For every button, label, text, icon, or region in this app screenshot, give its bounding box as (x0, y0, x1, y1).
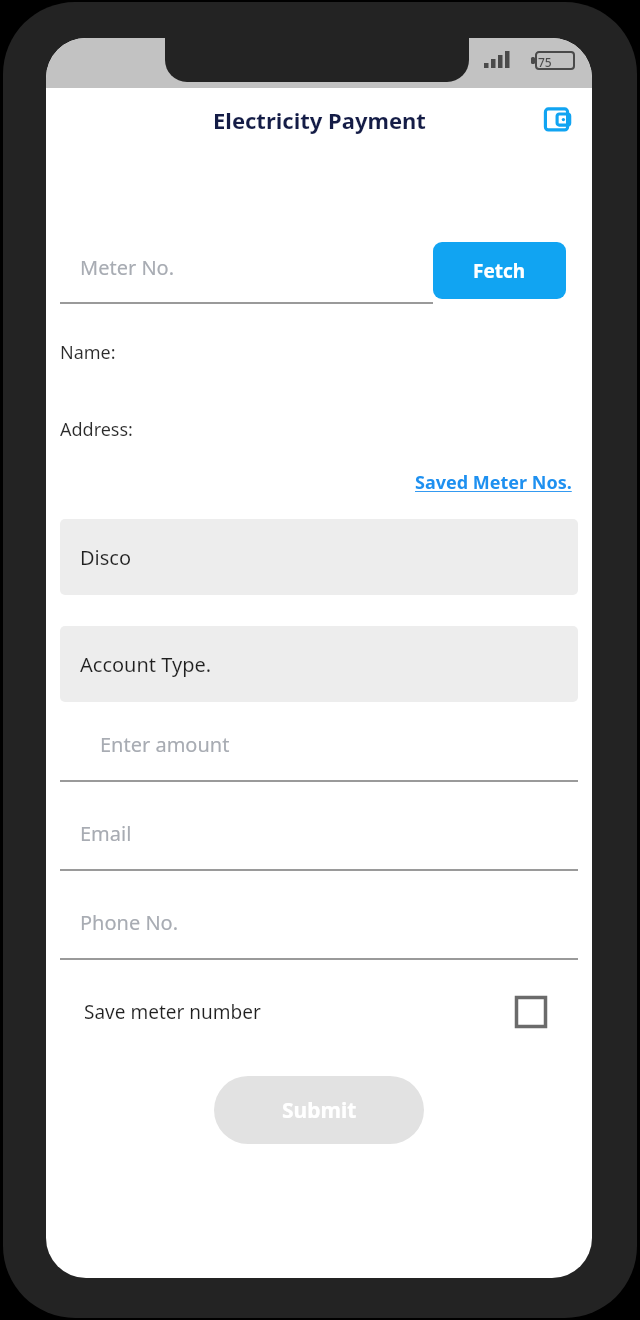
button[interactable]: Wallet (536, 98, 580, 142)
staticText: Electricity Payment (213, 105, 426, 135)
staticText: Save meter number (84, 999, 261, 1025)
staticText: Fetch (473, 258, 526, 284)
button[interactable]: Phone No. (60, 909, 578, 960)
button[interactable]: Disco (60, 519, 578, 595)
staticText: 75 (538, 54, 552, 70)
staticText: Saved Meter Nos. (415, 470, 572, 495)
button[interactable]: Saved Meter Nos. (415, 470, 572, 495)
button[interactable]: Submit (214, 1076, 424, 1144)
button[interactable]: Meter No. (60, 238, 433, 304)
staticText: Account Type. (80, 651, 212, 678)
button[interactable]: Save meter number (46, 986, 592, 1038)
button[interactable]: Email (60, 820, 578, 871)
staticText: Submit (282, 1096, 357, 1125)
staticText: Phone No. (80, 909, 179, 936)
staticText: Meter No. (80, 254, 175, 281)
staticText: Name: (60, 340, 116, 365)
staticText: Email (80, 820, 132, 847)
other: Save meter number checkbox (515, 996, 547, 1028)
button[interactable]: Enter amount (60, 731, 578, 782)
staticText: Address: (60, 417, 133, 442)
button[interactable]: Account Type. (60, 626, 578, 702)
staticText: Enter amount (100, 731, 230, 758)
staticText: Disco (80, 544, 132, 571)
button[interactable]: Fetch (433, 242, 566, 299)
